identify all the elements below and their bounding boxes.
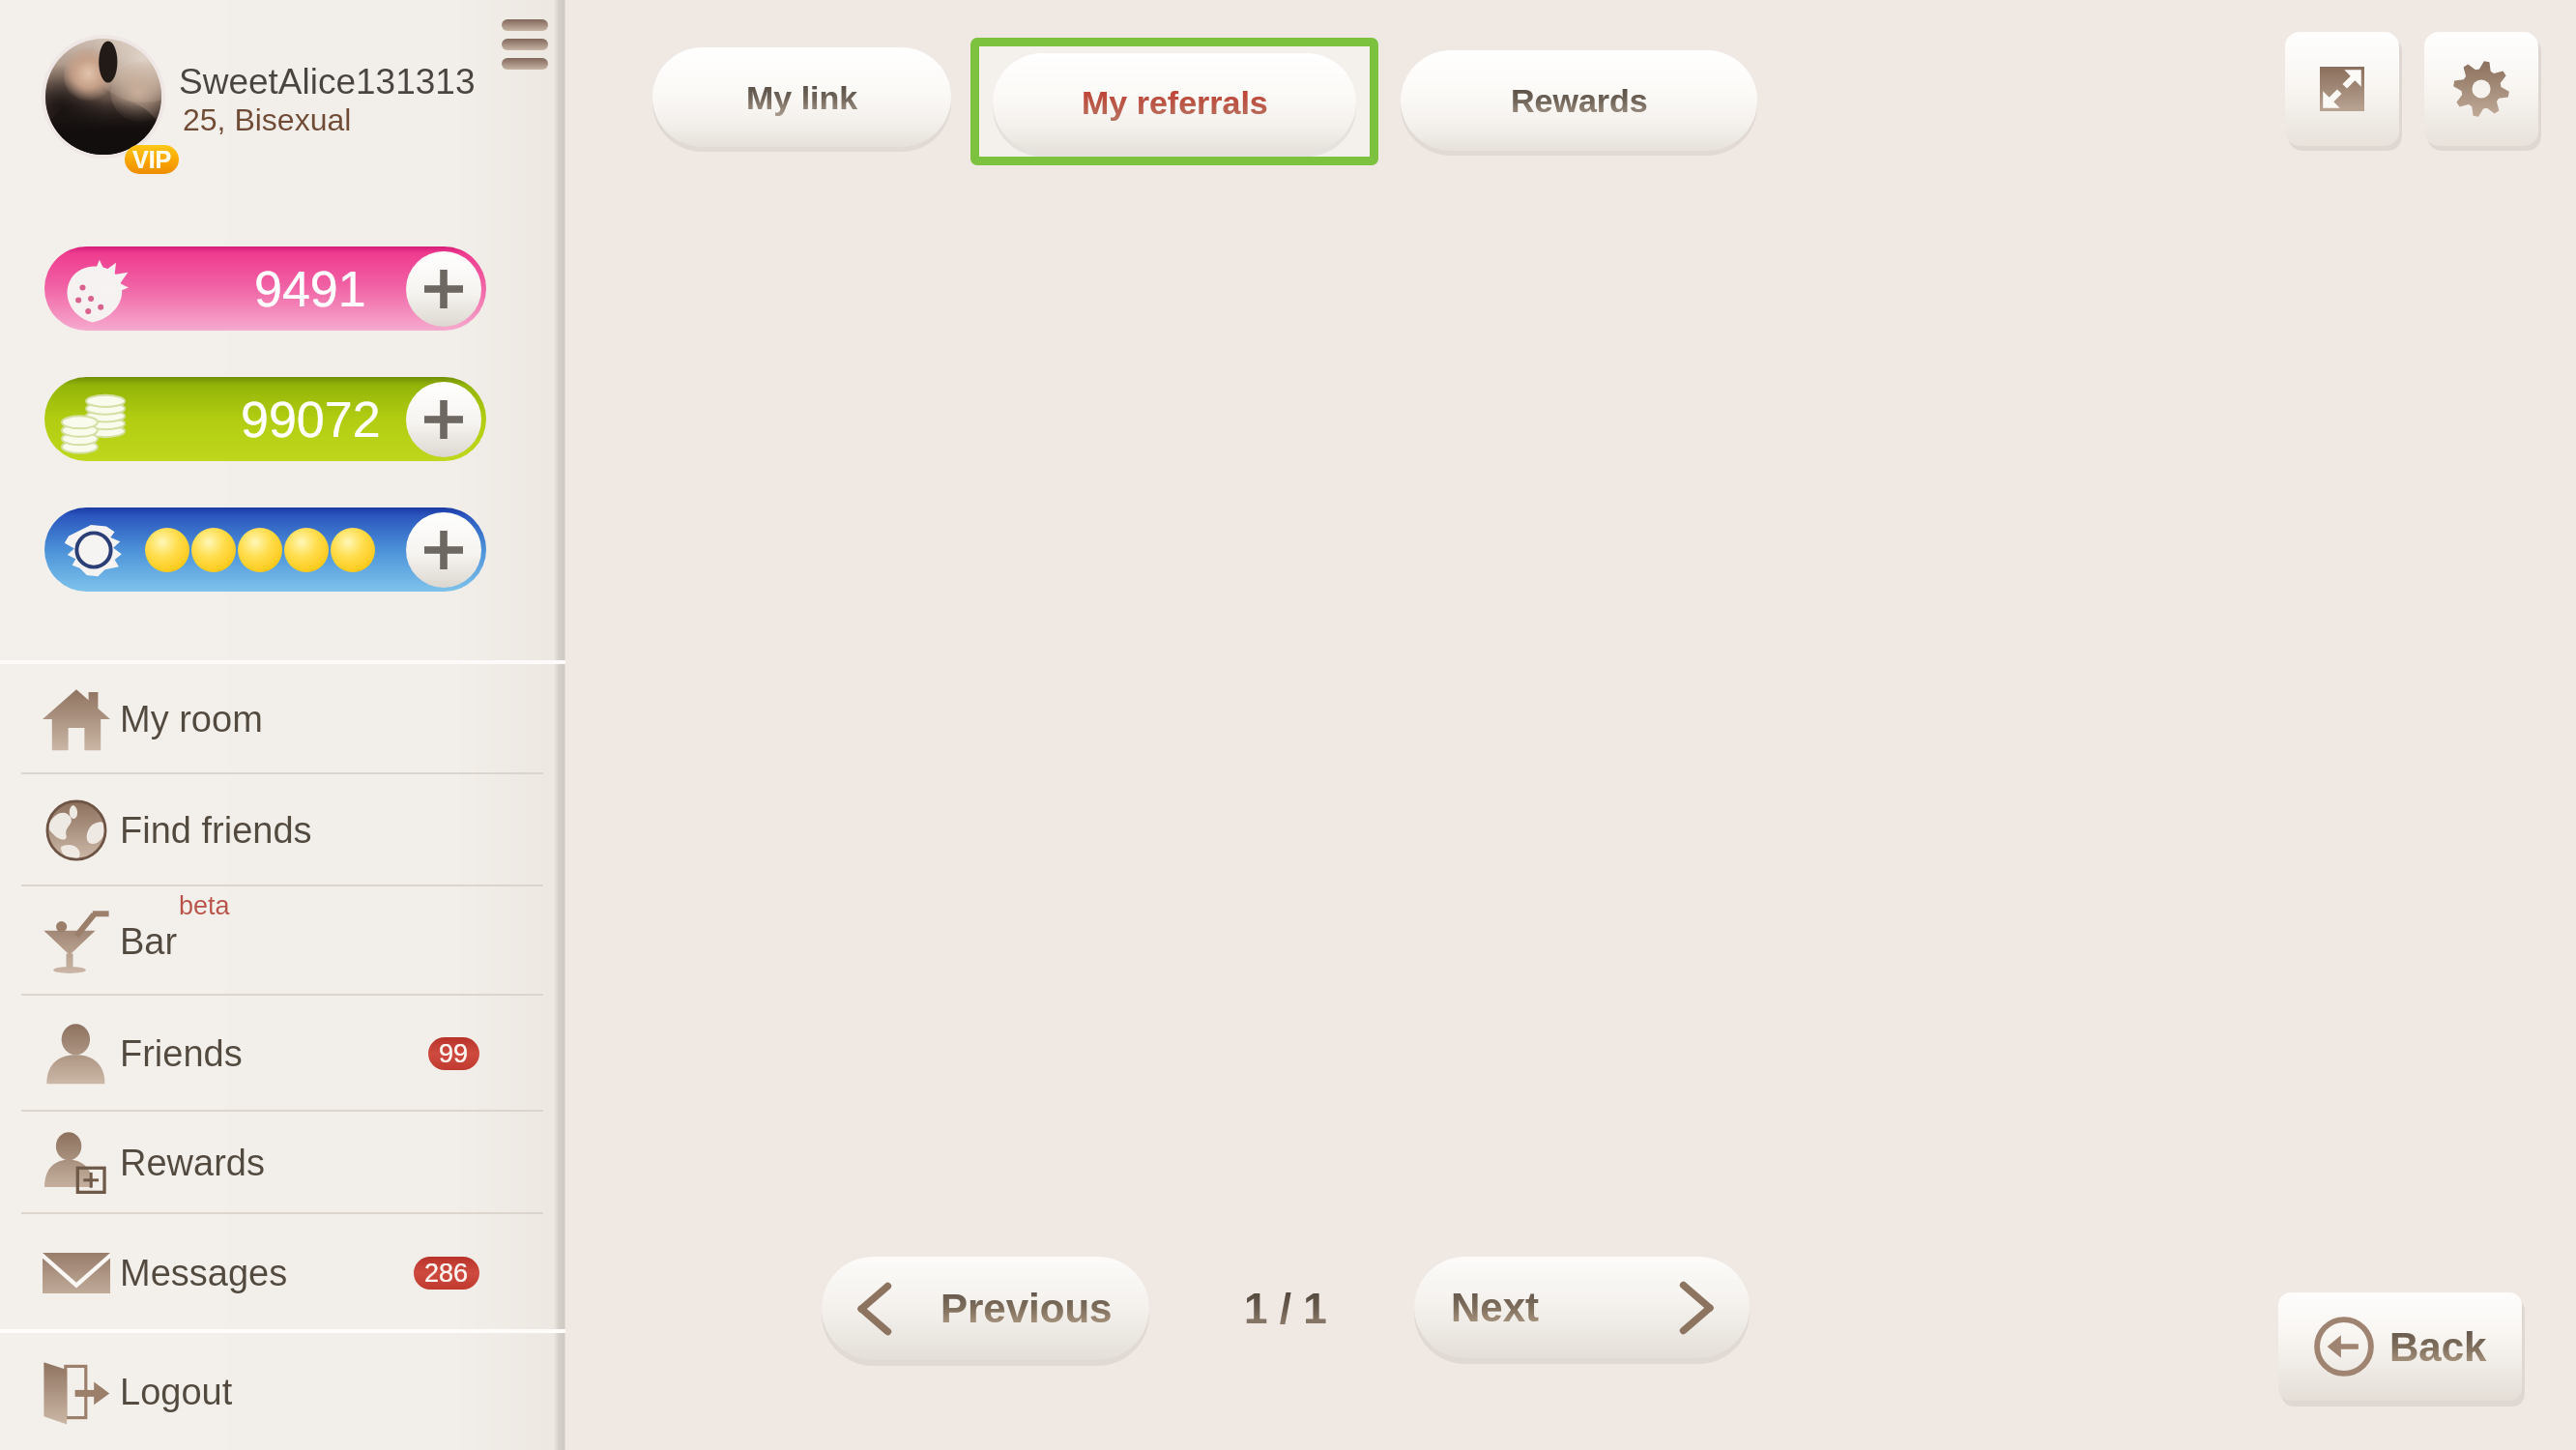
staticText: My link [746, 79, 858, 116]
button[interactable]: My room [0, 664, 565, 774]
button[interactable]: Next [1414, 1257, 1750, 1358]
staticText: 25, Bisexual [183, 102, 352, 137]
staticText: My referrals [1082, 84, 1268, 121]
button[interactable]: Previous [822, 1257, 1149, 1360]
staticText: Friends [120, 1033, 243, 1074]
staticText: Bar [120, 921, 178, 962]
button[interactable]: Rewards [0, 1112, 565, 1214]
staticText: VIP [132, 146, 172, 173]
button[interactable]: Friends [0, 996, 565, 1112]
staticText: 9491 [254, 261, 366, 317]
staticText: 286 [424, 1259, 469, 1288]
button[interactable]: Messages [0, 1214, 565, 1331]
button[interactable]: My referrals [993, 53, 1356, 152]
staticText: Find friends [120, 810, 312, 851]
button[interactable]: Add [44, 507, 486, 592]
button[interactable]: 9491 [44, 246, 486, 331]
button[interactable]: Add [406, 251, 481, 327]
staticText: Previous [941, 1286, 1113, 1331]
button[interactable]: Add [406, 512, 481, 588]
button[interactable]: Add [406, 382, 481, 457]
button[interactable]: 99072 [44, 377, 486, 461]
staticText: Messages [120, 1253, 288, 1293]
staticText: beta [179, 891, 230, 920]
button[interactable]: Settings [2424, 32, 2538, 146]
staticText: 1 / 1 [1244, 1285, 1327, 1332]
staticText: My room [120, 699, 263, 739]
staticText: Rewards [1511, 82, 1648, 119]
button[interactable]: Bar [0, 886, 565, 996]
staticText: Rewards [120, 1143, 265, 1183]
button[interactable]: Back [2278, 1292, 2522, 1401]
button[interactable]: Find friends [0, 774, 565, 886]
staticText: 99 [439, 1039, 469, 1068]
button[interactable]: Profile photo [42, 35, 165, 159]
button[interactable]: Rewards [1401, 50, 1757, 151]
staticText: Logout [120, 1372, 233, 1412]
button[interactable]: Fullscreen [2285, 32, 2399, 146]
button[interactable]: Logout [0, 1333, 565, 1450]
button[interactable]: My link [652, 47, 951, 147]
staticText: 99072 [241, 391, 381, 448]
staticText: SweetAlice131313 [179, 62, 476, 101]
button[interactable]: Menu [502, 19, 548, 70]
staticText: Next [1451, 1285, 1540, 1330]
staticText: Back [2389, 1324, 2487, 1370]
